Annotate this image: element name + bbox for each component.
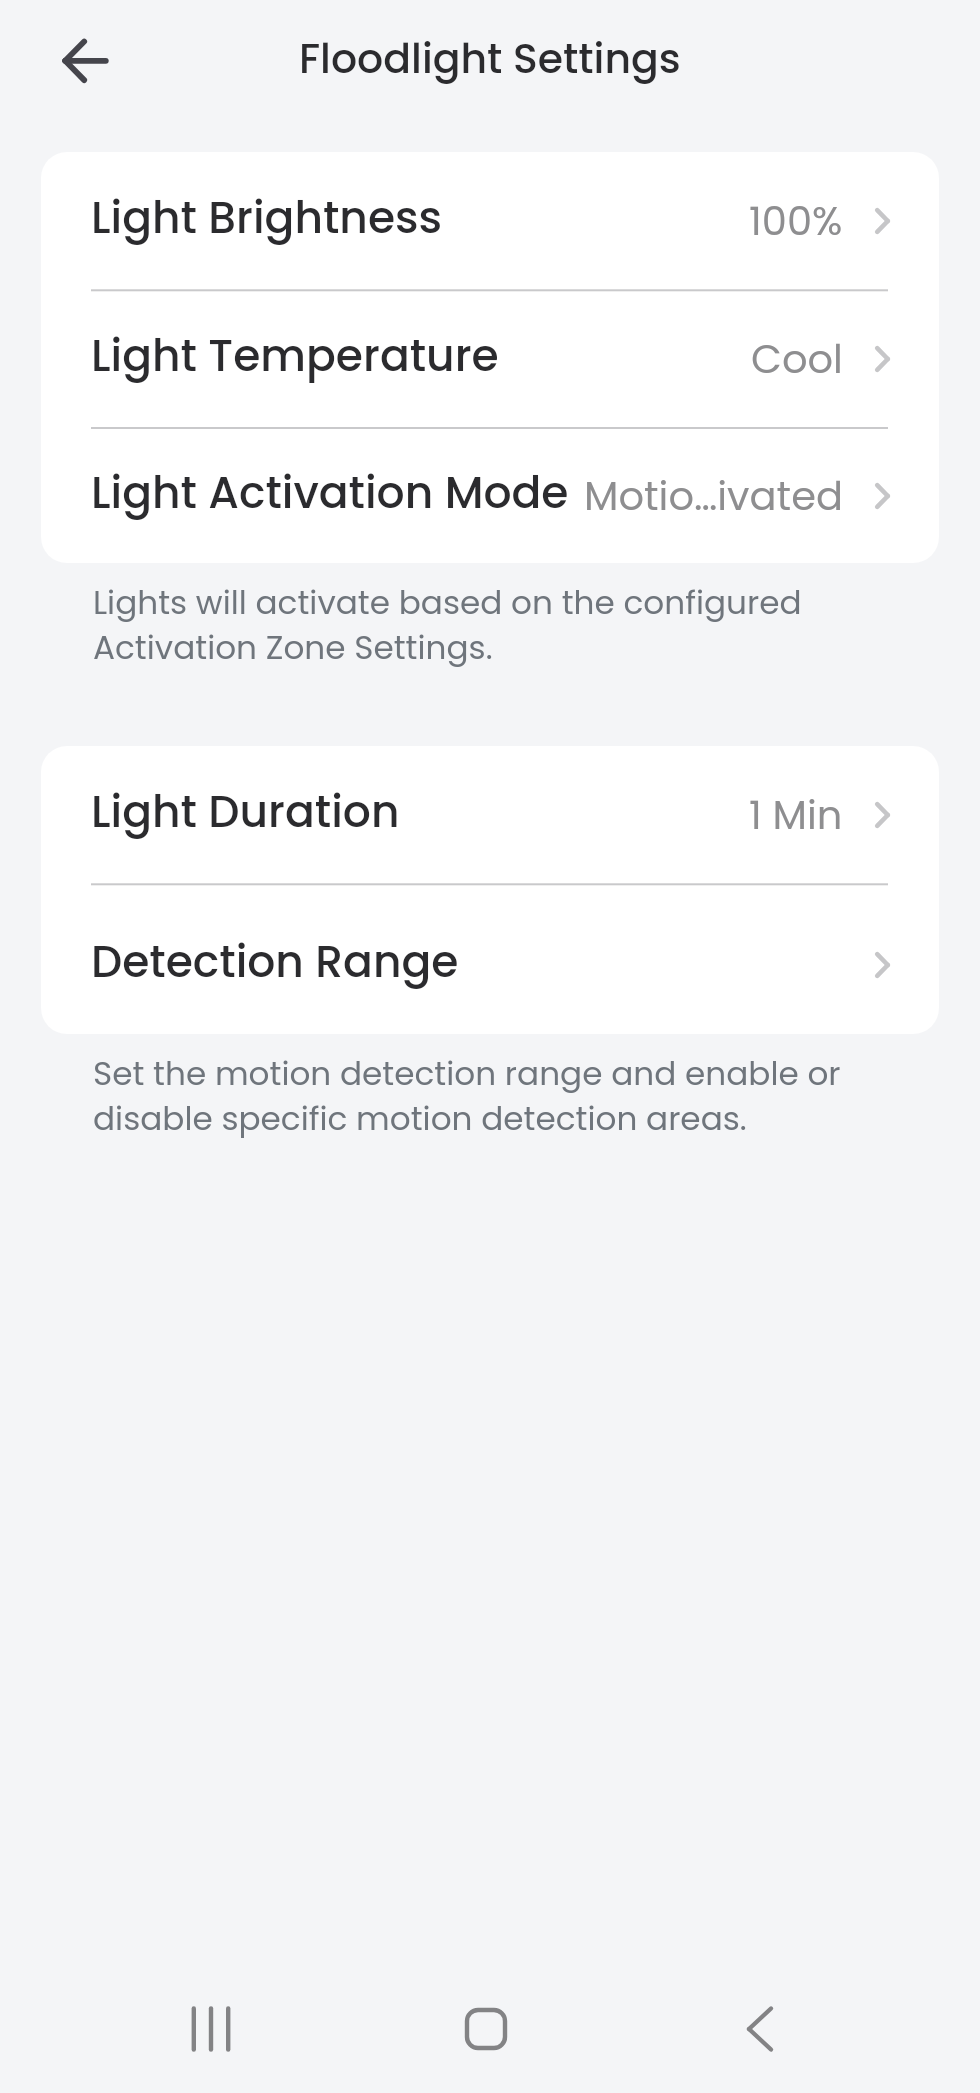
staticText: Light Duration: [91, 781, 400, 843]
staticText: Detection Range: [91, 931, 459, 993]
staticText: Light Brightness: [91, 187, 443, 249]
staticText: Motio…ivated: [584, 468, 843, 524]
button[interactable]: Home: [416, 1977, 556, 2081]
button[interactable]: Detection Range: [41, 884, 939, 1034]
button[interactable]: Light Duration: [41, 746, 939, 884]
staticText: Floodlight Settings: [299, 30, 681, 87]
staticText: Set the motion detection range and enabl…: [93, 1051, 920, 1142]
button[interactable]: Light Brightness: [41, 152, 939, 289]
staticText: Cool: [751, 331, 843, 387]
staticText: 100%: [749, 193, 843, 249]
staticText: Lights will activate based on the config…: [93, 580, 920, 671]
button[interactable]: Light Activation Mode: [41, 427, 939, 563]
staticText: Light Temperature: [91, 325, 499, 387]
staticText: 1 Min: [749, 787, 843, 843]
button[interactable]: Back: [0, 0, 120, 116]
staticText: Light Activation Mode: [91, 462, 569, 524]
button[interactable]: Light Temperature: [41, 289, 939, 427]
button[interactable]: Back: [690, 1977, 830, 2081]
button[interactable]: Recent apps: [141, 1977, 281, 2081]
